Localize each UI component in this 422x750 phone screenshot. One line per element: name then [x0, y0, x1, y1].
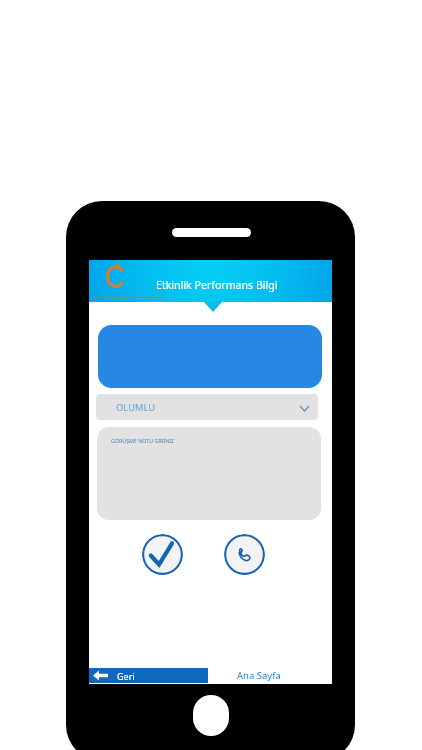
staticText: ÇAĞRI MERKEZİ UYGULAMASI [93, 294, 163, 301]
button[interactable]: Ana Sayfa [208, 668, 332, 683]
staticText: Geri [117, 670, 135, 682]
button[interactable]: Onayla [142, 534, 183, 575]
button[interactable]: Ara [224, 534, 265, 575]
button[interactable]: GÖRÜŞME NOTU GİRİNİZ [97, 427, 321, 520]
button[interactable] [98, 325, 322, 388]
staticText: Etkinlik Performans Bilgi [156, 278, 278, 292]
button[interactable]: Geri [89, 668, 208, 683]
staticText: GÖRÜŞME NOTU GİRİNİZ [111, 437, 174, 444]
button[interactable]: OLUMLU [96, 394, 318, 420]
staticText: Ana Sayfa [237, 669, 281, 682]
staticText: OLUMLU [116, 401, 156, 414]
